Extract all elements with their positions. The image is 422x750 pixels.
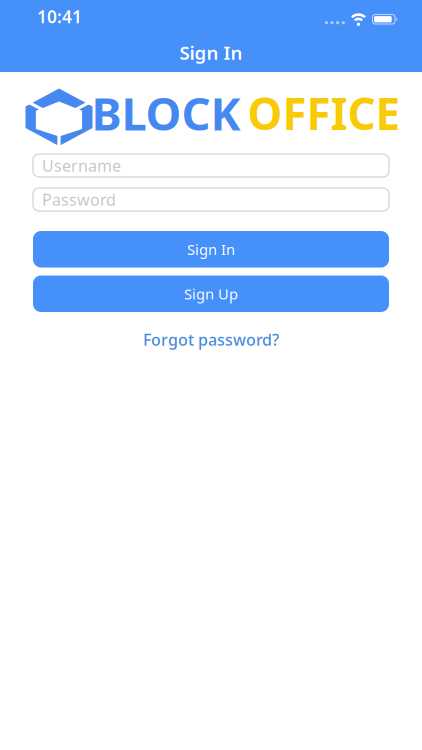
staticText: Sign In	[179, 40, 242, 65]
button[interactable]: Forgot password?	[143, 329, 279, 350]
staticText: Sign In	[187, 239, 235, 259]
staticText: Forgot password?	[143, 329, 279, 350]
staticText: 10:41	[37, 5, 82, 28]
staticText: Sign Up	[184, 284, 238, 303]
button[interactable]: Username	[33, 154, 389, 177]
button[interactable]: Sign In	[33, 231, 389, 267]
staticText: Username	[42, 155, 121, 176]
button[interactable]: Sign Up	[33, 275, 389, 312]
staticText: OFFICE	[247, 84, 400, 142]
staticText: Password	[42, 189, 116, 210]
staticText: BLOCK	[91, 83, 240, 143]
button[interactable]: Password	[33, 188, 389, 211]
